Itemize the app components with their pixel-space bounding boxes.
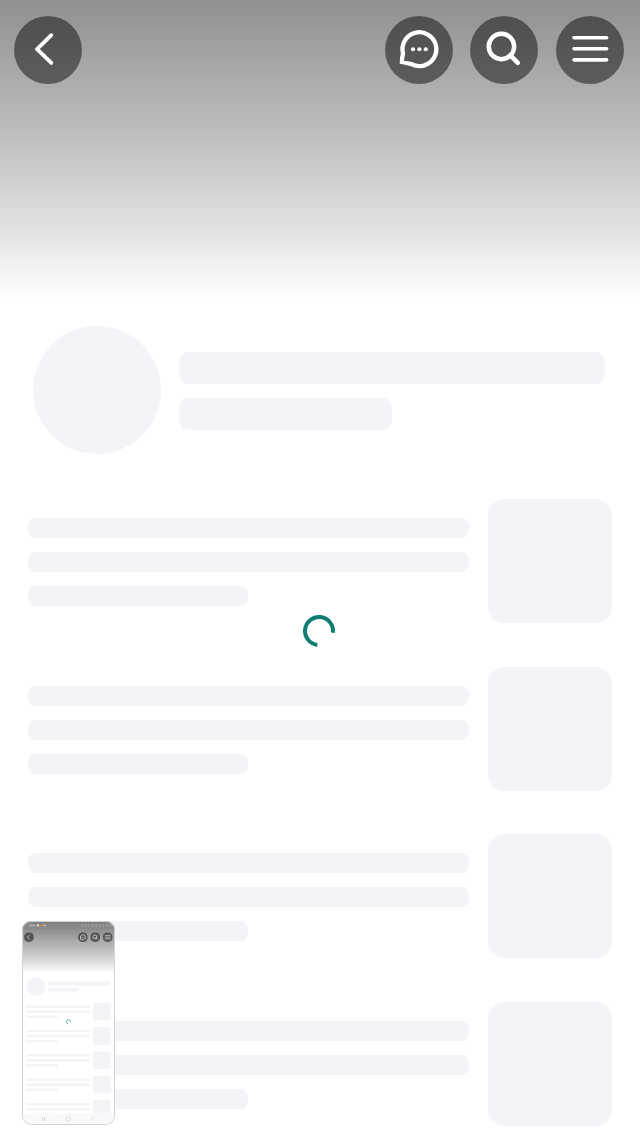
button[interactable]: Back [14,16,82,84]
button[interactable]: Messages [385,16,453,84]
button[interactable] [0,834,640,958]
button[interactable]: Search [470,16,538,84]
button[interactable]: Screen preview [22,921,115,1125]
button[interactable] [0,1002,640,1126]
button[interactable] [0,499,640,623]
button[interactable]: Menu [556,16,624,84]
button[interactable] [0,667,640,791]
